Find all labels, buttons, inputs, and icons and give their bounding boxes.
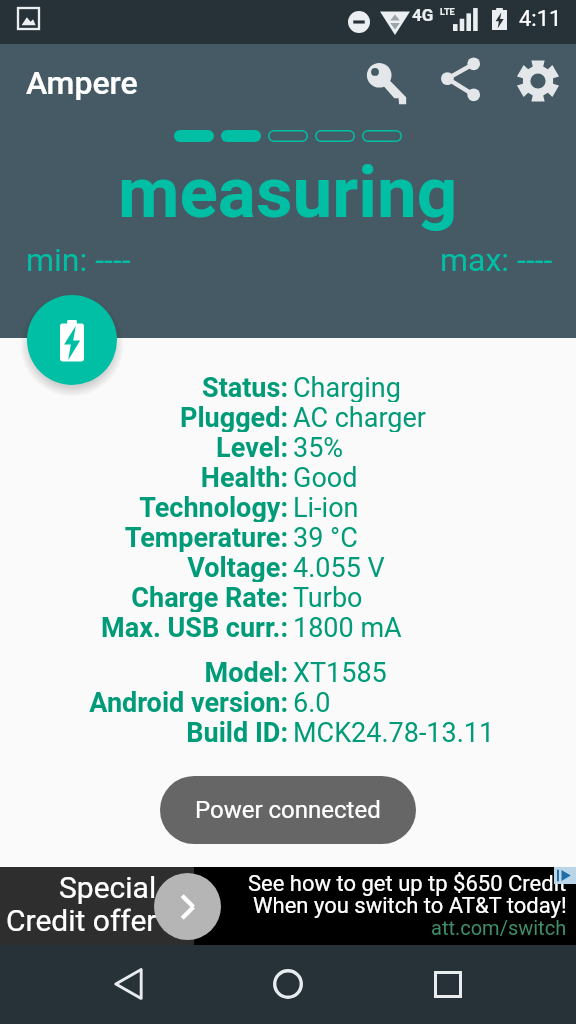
staticText: Plugged: [180, 402, 288, 432]
staticText: AC charger [293, 402, 426, 432]
staticText: measuring [118, 151, 458, 234]
staticText: Charge Rate: [131, 582, 288, 612]
staticText: 4G [412, 5, 434, 25]
staticText: Credit offer [6, 903, 157, 938]
staticText: Good [293, 462, 358, 492]
button[interactable]: Back [100, 956, 156, 1012]
staticText: Ampere [26, 64, 138, 102]
staticText: min: ---- [26, 241, 131, 279]
button[interactable]: Open ad [154, 873, 221, 940]
button[interactable]: Special [0, 867, 576, 945]
button[interactable]: Root access [361, 57, 409, 105]
staticText: 4:11 [519, 6, 562, 32]
staticText: Health: [200, 462, 288, 492]
staticText: 1800 mA [293, 612, 402, 642]
staticText: Level: [216, 432, 288, 462]
staticText: XT1585 [293, 657, 387, 687]
staticText: Model: [204, 657, 288, 687]
staticText: 4.055 V [293, 552, 385, 582]
staticText: Li-ion [293, 492, 359, 522]
button[interactable]: Share [433, 55, 481, 103]
staticText: When you switch to AT&T today! [253, 893, 567, 919]
staticText: Voltage: [187, 552, 288, 582]
button[interactable]: Home [260, 956, 316, 1012]
staticText: 39 °C [293, 522, 358, 552]
staticText: MCK24.78-13.11 [293, 717, 495, 747]
staticText: LTE [440, 7, 455, 18]
staticText: Power connected [195, 796, 381, 824]
staticText: Charging [293, 372, 401, 402]
staticText: 35% [293, 432, 344, 462]
staticText: Build ID: [186, 717, 288, 747]
staticText: Technology: [139, 492, 288, 522]
staticText: Status: [202, 372, 288, 402]
staticText: Temperature: [124, 522, 288, 552]
staticText: Android version: [89, 687, 288, 717]
staticText: Special [59, 870, 157, 905]
staticText: Turbo [293, 582, 363, 612]
staticText: max: ---- [440, 241, 553, 279]
button[interactable]: Measure battery [27, 295, 117, 385]
button[interactable]: Power connected [160, 776, 416, 844]
staticText: Max. USB curr.: [101, 612, 288, 642]
staticText: 6.0 [293, 687, 331, 717]
button[interactable]: Settings [514, 57, 562, 105]
button[interactable]: Recents [420, 956, 476, 1012]
staticText: See how to get up tp $650 Credit [248, 871, 567, 897]
staticText: att.com/switch [431, 916, 567, 939]
